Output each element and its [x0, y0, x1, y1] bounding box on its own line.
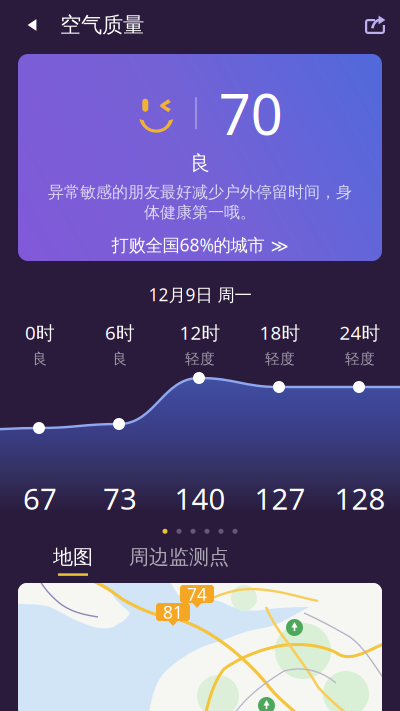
- staticText: 12时: [179, 320, 220, 345]
- staticText: 127: [254, 479, 305, 518]
- staticText: 70: [219, 76, 283, 150]
- staticText: 良: [32, 350, 47, 368]
- button[interactable]: 70: [18, 54, 382, 261]
- staticText: 140: [174, 479, 225, 518]
- staticText: 73: [103, 479, 137, 518]
- staticText: 128: [334, 479, 385, 518]
- staticText: 18时: [259, 320, 300, 345]
- button[interactable]: Back: [11, 3, 53, 47]
- staticText: 空气质量: [60, 12, 144, 38]
- staticText: 良: [112, 350, 127, 368]
- staticText: 轻度: [345, 350, 375, 368]
- staticText: 周边监测点: [129, 545, 229, 569]
- staticText: 12月9日 周一: [148, 283, 251, 306]
- staticText: 打败全国68%的城市 ≫: [111, 233, 288, 256]
- button[interactable]: 地图: [45, 545, 101, 576]
- staticText: 81: [163, 600, 183, 623]
- staticText: 轻度: [265, 350, 295, 368]
- staticText: 67: [23, 479, 57, 518]
- staticText: 6时: [105, 320, 135, 345]
- staticText: 体健康第一哦。: [144, 203, 256, 222]
- button[interactable]: Map: [18, 583, 382, 711]
- button[interactable]: Share: [352, 3, 398, 47]
- button[interactable]: 周边监测点: [121, 545, 237, 576]
- staticText: 良: [190, 151, 210, 175]
- staticText: 地图: [53, 545, 93, 569]
- staticText: 轻度: [185, 350, 215, 368]
- staticText: 异常敏感的朋友最好减少户外停留时间，身: [48, 182, 352, 202]
- staticText: 0时: [25, 320, 55, 345]
- staticText: 74: [187, 582, 207, 605]
- staticText: 24时: [339, 320, 380, 345]
